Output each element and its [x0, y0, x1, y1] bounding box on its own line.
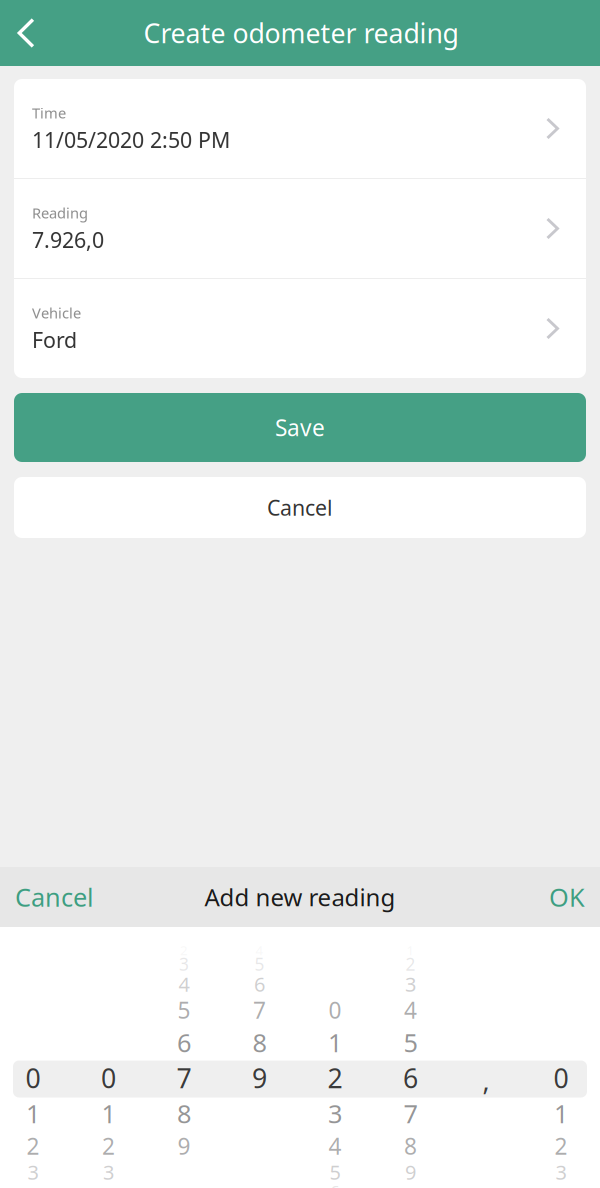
staticText: Vehicle	[32, 303, 81, 323]
staticText: 4	[328, 1131, 341, 1161]
staticText: 8	[404, 1131, 417, 1161]
staticText: 3	[103, 1159, 114, 1185]
staticText: 1	[328, 1026, 342, 1059]
staticText: 6	[177, 1026, 191, 1059]
staticText: 5	[177, 995, 190, 1025]
staticText: 9	[252, 1060, 267, 1096]
staticText: 0	[101, 1060, 116, 1096]
staticText: 5	[329, 1159, 340, 1185]
staticText: Reading	[32, 203, 88, 223]
button[interactable]: Back	[0, 0, 52, 66]
staticText: 7	[253, 995, 266, 1025]
staticText: 2	[102, 1131, 115, 1161]
staticText: Create odometer reading	[143, 15, 458, 51]
staticText: 3	[405, 971, 416, 997]
staticText: 5	[254, 952, 264, 975]
staticText: 4	[404, 995, 417, 1025]
staticText: OK	[549, 880, 585, 914]
button[interactable]: Time	[14, 79, 586, 178]
staticText: 2	[180, 941, 188, 959]
staticText: 2	[405, 952, 415, 975]
staticText: 5	[403, 1026, 417, 1059]
staticText: Ford	[32, 326, 77, 354]
button[interactable]: Digit 0	[0, 927, 600, 1188]
staticText: 3	[27, 1159, 38, 1185]
button[interactable]: Cancel	[0, 866, 106, 928]
button[interactable]: Digit 2	[0, 927, 600, 1188]
staticText: 1	[554, 1097, 568, 1130]
button[interactable]: Digit 0	[0, 927, 600, 1188]
staticText: 6	[330, 1180, 340, 1188]
staticText: 7	[403, 1097, 417, 1130]
button[interactable]: Digit 6	[0, 927, 600, 1188]
button[interactable]: Digit 9	[0, 927, 600, 1188]
staticText: Save	[275, 412, 325, 442]
staticText: 1	[406, 941, 414, 959]
button[interactable]: Vehicle	[14, 279, 586, 378]
staticText: 11/05/2020 2:50 PM	[32, 126, 230, 154]
staticText: 3	[555, 1159, 566, 1185]
staticText: 9	[405, 1159, 416, 1185]
staticText: 1	[26, 1097, 40, 1130]
staticText: 0	[328, 995, 341, 1025]
button[interactable]: Reading	[14, 179, 586, 278]
staticText: 9	[177, 1131, 190, 1161]
staticText: 6	[403, 1060, 418, 1096]
staticText: 7	[176, 1060, 191, 1096]
staticText: 1	[101, 1097, 115, 1130]
button[interactable]: Digit 0	[0, 927, 600, 1188]
staticText: 2	[554, 1131, 567, 1161]
staticText: 0	[553, 1060, 568, 1096]
staticText: 8	[177, 1097, 191, 1130]
staticText: 4	[255, 941, 263, 959]
staticText: Time	[32, 103, 66, 123]
staticText: ,	[482, 1062, 489, 1098]
staticText: 3	[179, 952, 189, 975]
button[interactable]: Cancel	[14, 477, 586, 538]
staticText: Add new reading	[204, 881, 395, 913]
staticText: 2	[327, 1060, 342, 1096]
staticText: 6	[254, 971, 265, 997]
staticText: 8	[252, 1026, 266, 1059]
staticText: Cancel	[15, 880, 94, 914]
button[interactable]: OK	[537, 866, 600, 928]
button[interactable]: Digit 7	[0, 927, 600, 1188]
staticText: 0	[25, 1060, 40, 1096]
staticText: 7.926,0	[32, 226, 104, 254]
staticText: Cancel	[267, 493, 333, 522]
staticText: 2	[26, 1131, 39, 1161]
staticText: 3	[328, 1097, 342, 1130]
staticText: 4	[178, 971, 189, 997]
button[interactable]: Save	[14, 393, 586, 462]
